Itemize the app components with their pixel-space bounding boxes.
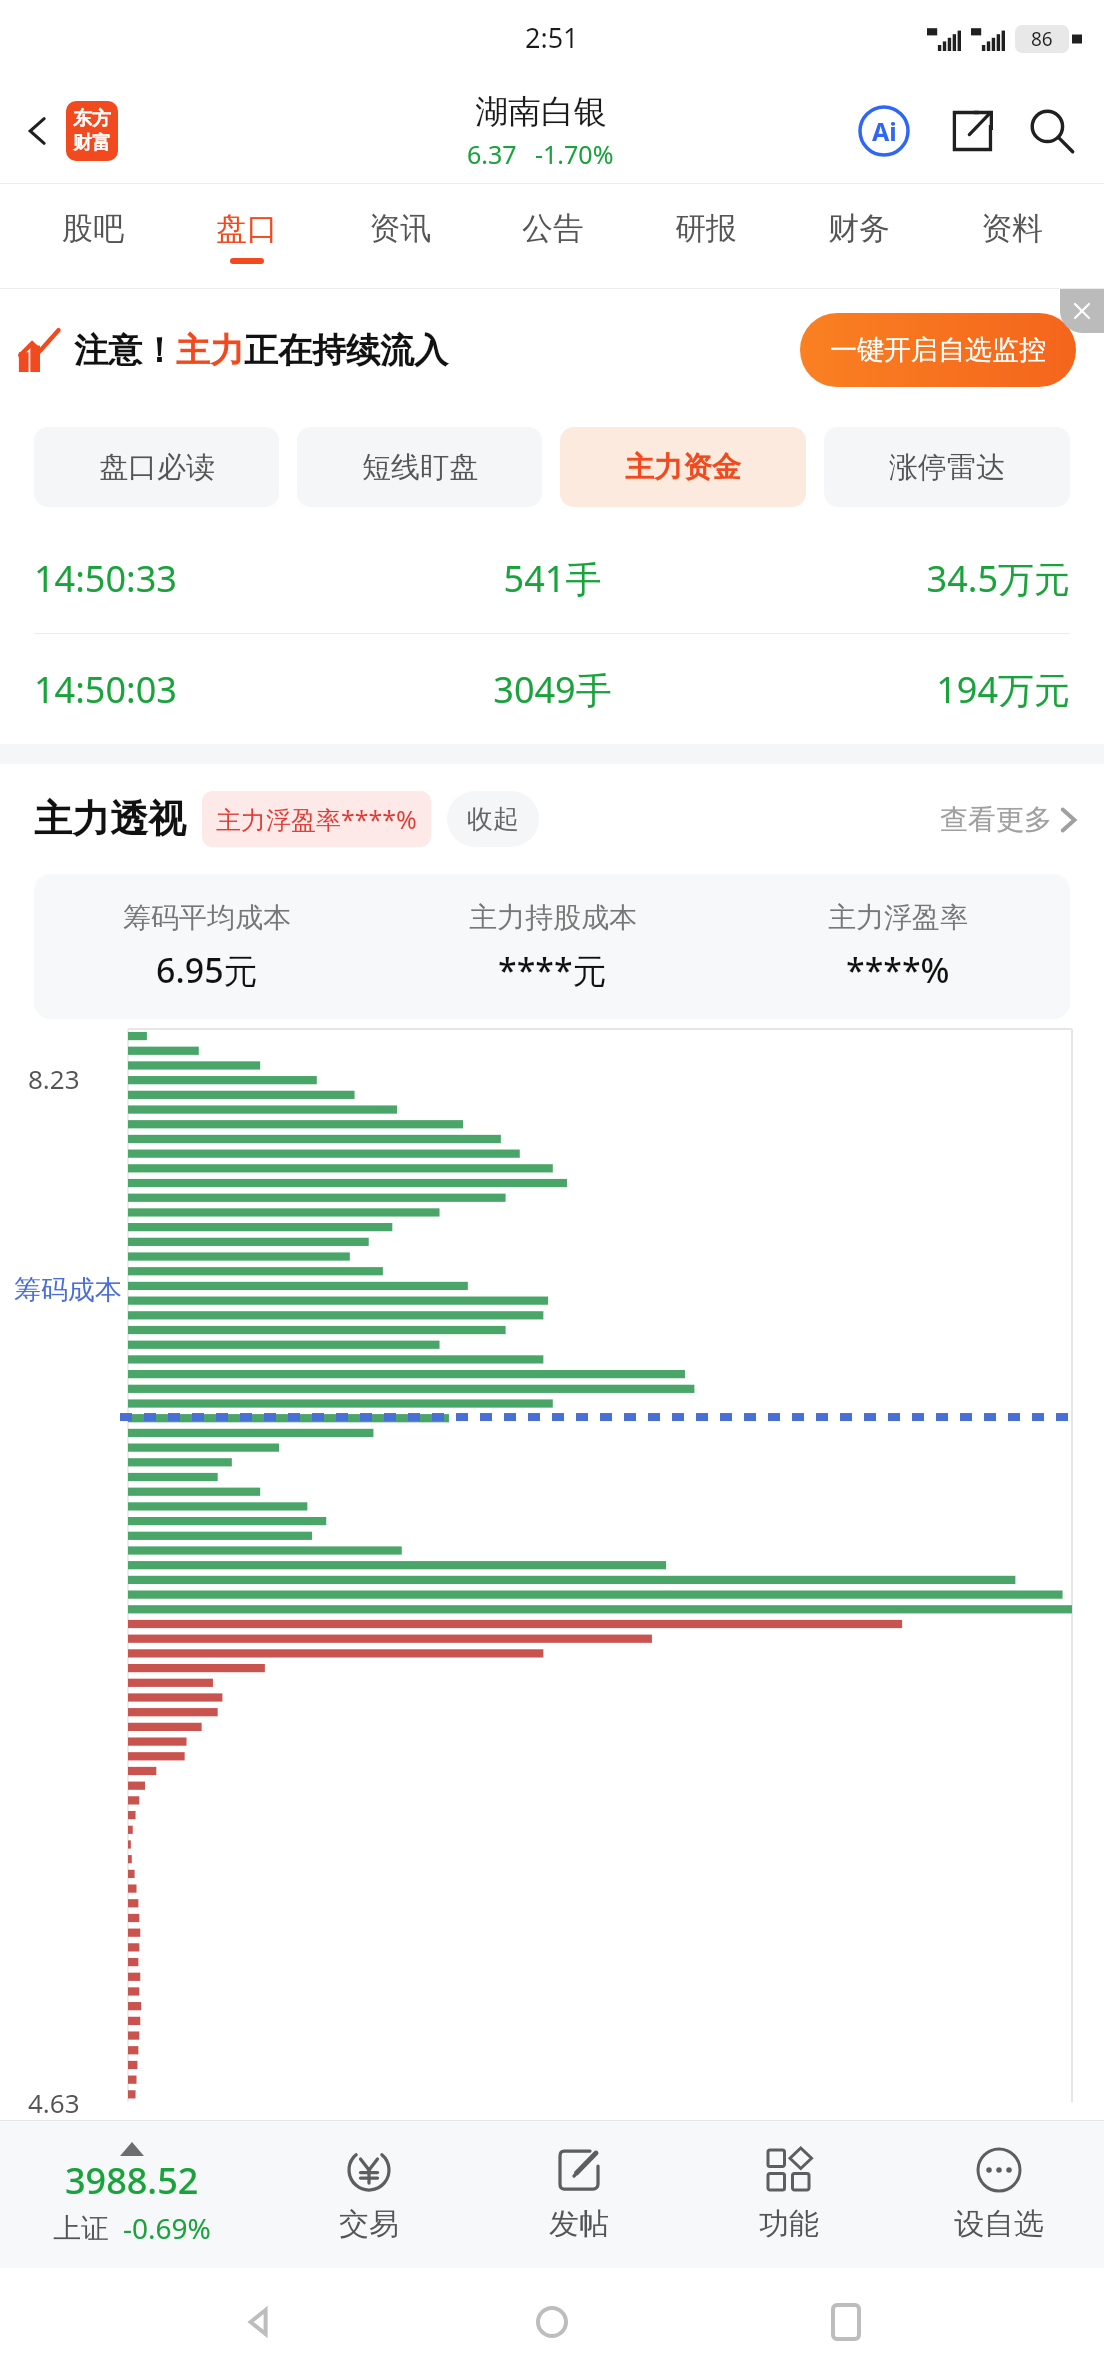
- button[interactable]: Close: [1060, 289, 1104, 333]
- staticText: 主力资金: [625, 449, 741, 486]
- button[interactable]: 短线盯盘: [297, 427, 542, 507]
- button[interactable]: 涨停雷达: [824, 427, 1070, 507]
- staticText: 14:50:33: [34, 554, 380, 603]
- staticText: 3988.52: [65, 2156, 199, 2205]
- staticText: 正在持续流入: [244, 329, 448, 372]
- button[interactable]: 主力浮盈率****%: [216, 791, 417, 847]
- button[interactable]: 股吧: [16, 184, 170, 289]
- button[interactable]: 公告: [476, 184, 629, 289]
- staticText: 筹码成本: [14, 1273, 122, 1307]
- staticText: 筹码平均成本: [123, 900, 291, 935]
- staticText: 6.37: [467, 137, 517, 171]
- staticText: 查看更多: [940, 802, 1052, 837]
- staticText: 财富: [73, 131, 111, 155]
- button[interactable]: Home: [517, 2287, 587, 2357]
- staticText: 主力浮盈率****%: [216, 802, 417, 836]
- button[interactable]: 发帖: [474, 2120, 684, 2268]
- staticText: 34.5万元: [725, 554, 1070, 603]
- staticText: 公告: [522, 209, 584, 248]
- staticText: Ai: [872, 114, 897, 148]
- button[interactable]: 交易: [264, 2120, 474, 2268]
- button[interactable]: 14:50:33: [34, 523, 1070, 633]
- staticText: 14:50:03: [34, 665, 380, 714]
- staticText: 资讯: [369, 209, 431, 248]
- staticText: 6.95元: [156, 947, 258, 993]
- button[interactable]: 研报: [629, 184, 782, 289]
- button[interactable]: 查看更多: [940, 802, 1078, 837]
- button[interactable]: 功能: [684, 2120, 894, 2268]
- staticText: 股吧: [62, 209, 124, 248]
- button[interactable]: Recents: [811, 2287, 881, 2357]
- button[interactable]: 收起: [467, 791, 519, 847]
- staticText: 上证: [53, 2211, 109, 2246]
- staticText: 541手: [380, 554, 725, 603]
- staticText: 主力: [176, 329, 244, 372]
- staticText: 功能: [759, 2205, 819, 2243]
- staticText: ****元: [498, 947, 607, 993]
- staticText: 86: [1031, 26, 1053, 52]
- staticText: 8.23: [28, 1061, 80, 1096]
- button[interactable]: 一键开启自选监控: [800, 313, 1076, 387]
- button[interactable]: 盘口必读: [34, 427, 279, 507]
- button[interactable]: Back: [224, 2287, 294, 2357]
- staticText: 交易: [339, 2205, 399, 2243]
- button[interactable]: Search: [1020, 99, 1084, 163]
- button[interactable]: 东方财富: [66, 101, 118, 161]
- staticText: 财务: [828, 209, 890, 248]
- staticText: 3049手: [380, 665, 725, 714]
- staticText: 盘口: [216, 209, 278, 248]
- button[interactable]: 14:50:03: [34, 634, 1070, 744]
- staticText: 主力透视: [34, 795, 186, 843]
- staticText: -1.70%: [535, 137, 614, 171]
- staticText: 湖南白银: [475, 91, 607, 133]
- staticText: 资料: [981, 209, 1043, 248]
- staticText: 2:51: [525, 19, 579, 56]
- button[interactable]: Share: [940, 99, 1004, 163]
- staticText: 194万元: [725, 665, 1070, 714]
- staticText: 盘口必读: [99, 449, 215, 486]
- staticText: 短线盯盘: [362, 449, 478, 486]
- staticText: 设自选: [954, 2205, 1044, 2243]
- button[interactable]: 3988.52: [0, 2120, 264, 2268]
- staticText: 发帖: [549, 2205, 609, 2243]
- staticText: -0.69%: [123, 2209, 211, 2247]
- staticText: 研报: [675, 209, 737, 248]
- button[interactable]: AI: [852, 99, 916, 163]
- button[interactable]: 财务: [782, 184, 935, 289]
- staticText: 东方: [73, 107, 111, 131]
- staticText: 注意！: [74, 329, 176, 372]
- button[interactable]: 资料: [935, 184, 1088, 289]
- button[interactable]: 设自选: [894, 2120, 1104, 2268]
- staticText: 主力浮盈率: [828, 900, 968, 935]
- staticText: ****%: [846, 947, 950, 993]
- staticText: 主力持股成本: [469, 900, 637, 935]
- button[interactable]: 主力资金: [560, 427, 806, 507]
- button[interactable]: Back: [10, 103, 66, 159]
- staticText: 一键开启自选监控: [830, 333, 1046, 367]
- button[interactable]: 筹码平均成本: [34, 874, 1070, 1019]
- button[interactable]: 盘口: [170, 184, 323, 289]
- staticText: 涨停雷达: [889, 449, 1005, 486]
- button[interactable]: 资讯: [323, 184, 476, 289]
- staticText: 4.63: [28, 2085, 80, 2120]
- staticText: 收起: [467, 803, 519, 836]
